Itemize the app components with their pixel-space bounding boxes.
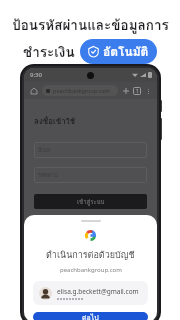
staticText: peachbankgroup.com (53, 87, 110, 94)
staticText: elisa.g.beckett@gmail.com (57, 287, 139, 296)
staticText: อัตโนมัติ (103, 42, 149, 61)
button[interactable]: เข้าสู่ระบบ (34, 194, 147, 209)
staticText: ต่อไป (82, 312, 99, 320)
staticText: ป้อนรหัสผ่านและข้อมูลการ (12, 14, 169, 35)
staticText: รหัสผ่าน (38, 171, 59, 180)
button[interactable]: รหัสผ่าน (34, 167, 147, 183)
button[interactable]: Home (28, 85, 39, 96)
staticText: 9:30 (30, 71, 42, 79)
staticText: peachbankgroup.com (60, 266, 122, 274)
button[interactable]: อัตโนมัติ (80, 39, 157, 64)
button[interactable]: ต่อไป (33, 312, 148, 320)
staticText: ดำเนินการต่อด้วยบัญชี (46, 248, 135, 262)
staticText: ลงชื่อเข้าใช้ (34, 115, 76, 128)
button[interactable]: More options (143, 86, 153, 96)
staticText: ชำระเงิน (23, 41, 75, 62)
staticText: เข้าสู่ระบบ (77, 197, 105, 207)
button[interactable]: peachbankgroup.com (42, 85, 118, 96)
button[interactable]: อีเมล (34, 142, 147, 158)
staticText: 1 (136, 88, 139, 95)
button[interactable]: New tab (121, 86, 131, 96)
button[interactable]: elisa.g.beckett@gmail.com (33, 281, 148, 305)
button[interactable]: Tabs (133, 87, 141, 95)
staticText: อีเมล (38, 146, 51, 155)
